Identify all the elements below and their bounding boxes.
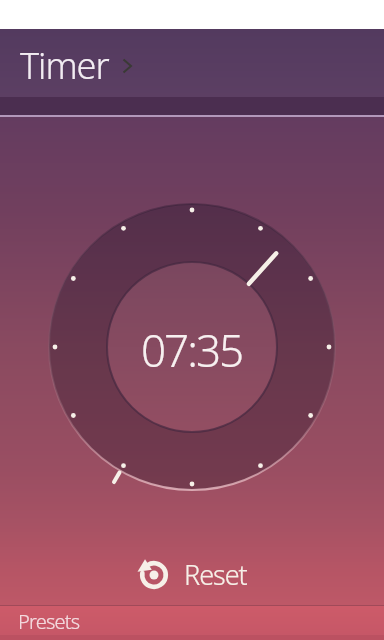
staticText: Timer — [20, 41, 109, 90]
button[interactable]: Reset — [137, 556, 247, 593]
staticText: Reset — [184, 556, 247, 593]
staticText: 07:35 — [141, 320, 243, 380]
button[interactable]: Timer — [0, 29, 384, 97]
button[interactable]: Presets — [0, 605, 384, 640]
staticText: Presets — [18, 608, 80, 635]
